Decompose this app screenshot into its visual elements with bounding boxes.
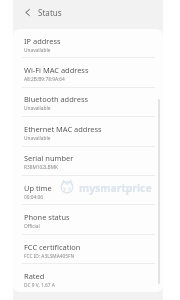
button[interactable]: Serial number xyxy=(13,146,163,175)
button[interactable]: Up time xyxy=(13,176,163,205)
staticText: mysmartprice xyxy=(79,181,152,195)
staticText: IP address xyxy=(24,36,61,46)
staticText: DC 9 V, 1.67 A xyxy=(24,282,55,289)
button[interactable]: Back xyxy=(20,2,34,22)
staticText: Up time xyxy=(24,183,52,193)
staticText: Unavailable xyxy=(24,47,51,54)
staticText: Bluetooth address xyxy=(24,94,89,104)
staticText: Unavailable xyxy=(24,105,51,112)
staticText: Rated xyxy=(24,271,45,281)
button[interactable]: Bluetooth address xyxy=(13,87,163,116)
button[interactable]: Wi-Fi MAC address xyxy=(13,58,163,87)
staticText: Ethernet MAC address xyxy=(24,124,102,134)
staticText: Phone status xyxy=(24,212,70,222)
staticText: Unavailable xyxy=(24,135,51,142)
button[interactable]: Phone status xyxy=(13,205,163,234)
staticText: FCC ID: A3LSMA405FN xyxy=(24,253,75,260)
staticText: A8:2B:B9:78:9A:64 xyxy=(24,76,65,83)
staticText: Official xyxy=(24,223,40,230)
button[interactable]: Rated xyxy=(13,264,163,293)
staticText: Wi-Fi MAC address xyxy=(24,65,89,75)
staticText: FCC certification xyxy=(24,242,81,252)
button[interactable]: Ethernet MAC address xyxy=(13,117,163,146)
staticText: 00:04:06 xyxy=(24,194,44,201)
button[interactable]: IP address xyxy=(13,29,163,58)
staticText: Serial number xyxy=(24,153,74,163)
staticText: Status xyxy=(38,7,62,18)
button[interactable]: FCC certification xyxy=(13,235,163,264)
staticText: R38M102LBMK xyxy=(24,164,59,171)
